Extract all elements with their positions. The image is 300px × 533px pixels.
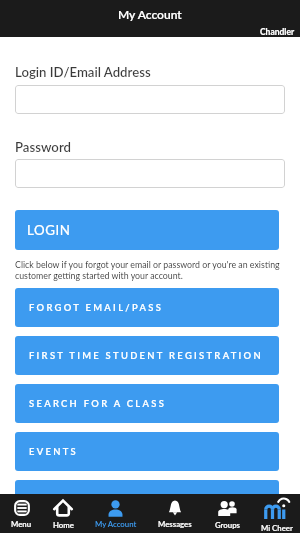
staticText: Password xyxy=(15,139,71,155)
button[interactable]: My Account xyxy=(83,500,148,528)
button[interactable]: Groups xyxy=(201,498,253,529)
staticText: Click below if you forgot your email or … xyxy=(15,259,285,281)
staticText: Messages xyxy=(158,519,192,528)
button[interactable]: FORGOT EMAIL/PASS xyxy=(15,288,279,327)
staticText: Login ID/Email Address xyxy=(15,64,151,80)
button[interactable]: Mi Cheer xyxy=(253,496,300,532)
button[interactable]: SEARCH FOR A CLASS xyxy=(15,384,279,423)
staticText: EVENTS xyxy=(29,446,78,457)
staticText: Mi Cheer xyxy=(261,523,293,532)
button[interactable] xyxy=(15,85,285,114)
button[interactable]: Menu xyxy=(0,499,43,528)
button[interactable]: LOGIN xyxy=(15,210,279,250)
staticText: FIRST TIME STUDENT REGISTRATION xyxy=(29,350,263,361)
staticText: My Account xyxy=(95,519,137,528)
staticText: Menu xyxy=(11,519,32,528)
staticText: CALENDAR xyxy=(29,494,97,505)
staticText: Chandler xyxy=(260,27,295,37)
button[interactable]: Home xyxy=(43,498,83,529)
button[interactable]: Messages xyxy=(148,499,201,528)
staticText: LOGIN xyxy=(27,222,71,238)
staticText: SEARCH FOR A CLASS xyxy=(29,398,167,409)
button[interactable] xyxy=(15,159,285,188)
button[interactable]: FIRST TIME STUDENT REGISTRATION xyxy=(15,336,279,375)
button[interactable]: CALENDAR xyxy=(15,480,279,519)
staticText: FORGOT EMAIL/PASS xyxy=(29,302,164,313)
staticText: Groups xyxy=(215,520,240,529)
staticText: Home xyxy=(53,520,74,529)
staticText: My Account xyxy=(118,7,182,21)
button[interactable]: EVENTS xyxy=(15,432,279,471)
